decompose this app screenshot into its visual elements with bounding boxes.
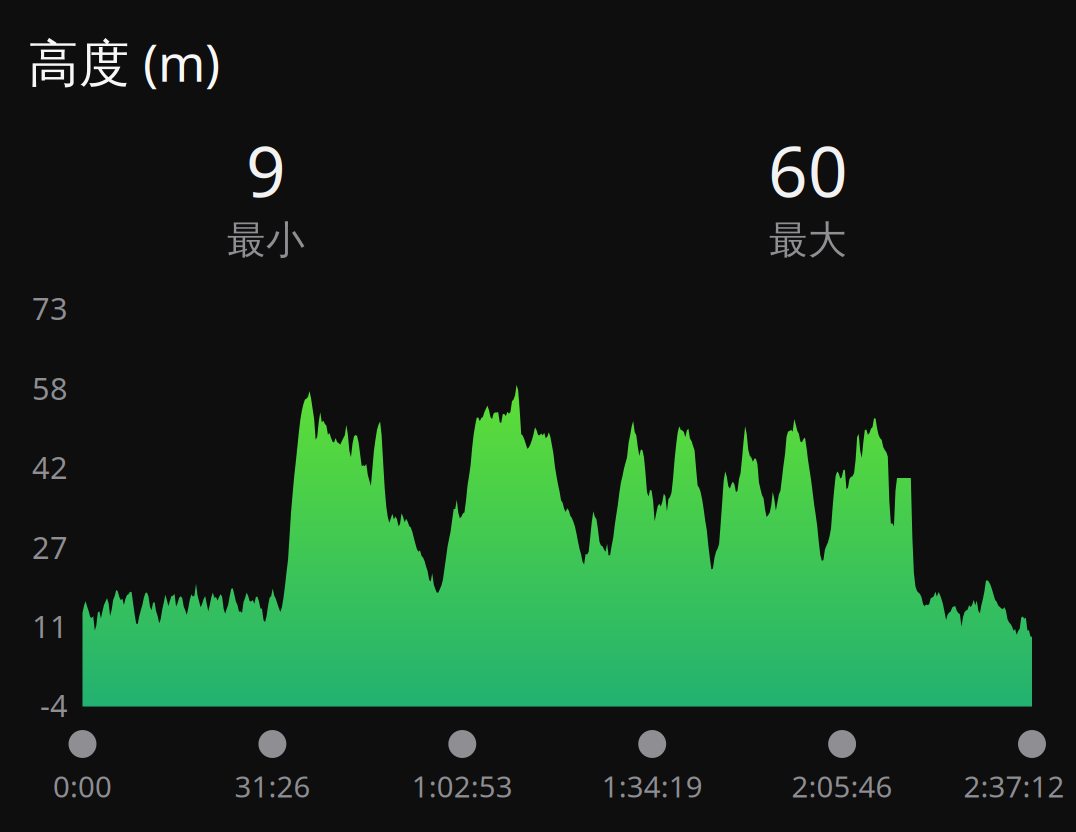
staticText: 9 bbox=[246, 124, 286, 216]
staticText: 73 bbox=[32, 288, 68, 328]
staticText: 31:26 bbox=[234, 766, 310, 805]
staticText: 27 bbox=[32, 527, 68, 567]
staticText: 42 bbox=[32, 447, 68, 487]
staticText: 最大 bbox=[769, 216, 847, 264]
staticText: 60 bbox=[768, 124, 848, 216]
staticText: 11 bbox=[32, 606, 68, 646]
staticText: 2:05:46 bbox=[792, 766, 893, 805]
button[interactable]: Elevation chart bbox=[82, 308, 1032, 706]
staticText: 高度 (m) bbox=[28, 28, 220, 96]
staticText: -4 bbox=[40, 685, 68, 725]
staticText: 1:34:19 bbox=[602, 766, 703, 805]
staticText: 最小 bbox=[227, 216, 305, 264]
staticText: 1:02:53 bbox=[412, 766, 513, 805]
staticText: 0:00 bbox=[53, 766, 112, 805]
staticText: 2:37:12 bbox=[963, 766, 1064, 805]
staticText: 58 bbox=[32, 368, 68, 408]
